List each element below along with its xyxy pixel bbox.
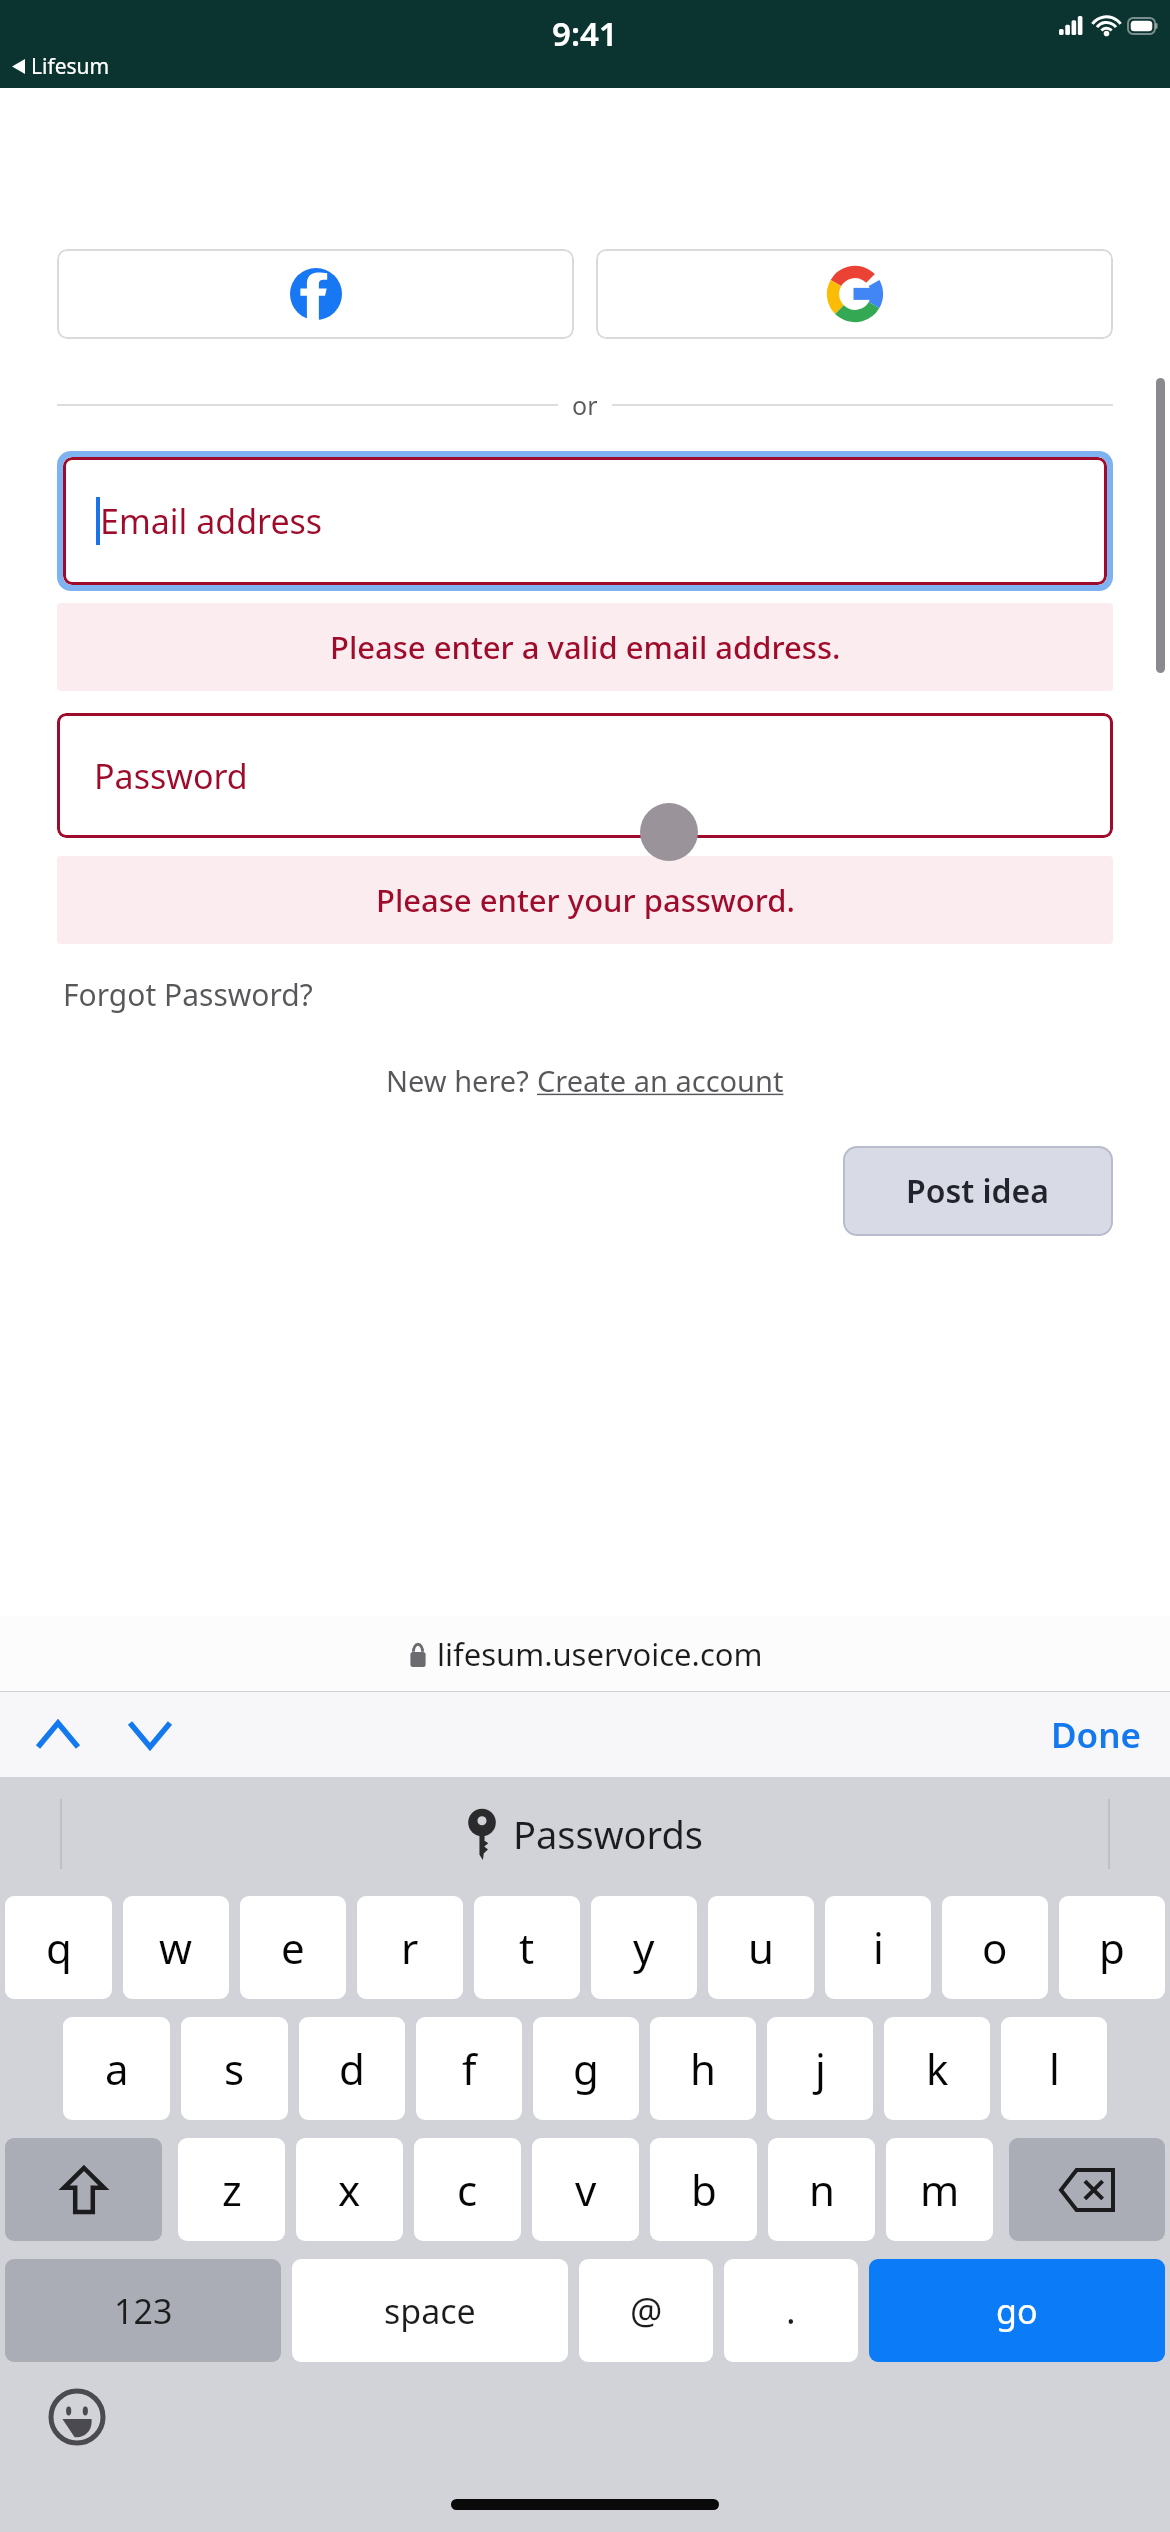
staticText: t — [519, 1919, 535, 1976]
staticText: Forgot Password? — [63, 974, 313, 1015]
button[interactable]: h — [650, 2017, 756, 2120]
staticText: p — [1099, 1919, 1125, 1976]
button[interactable]: go — [869, 2259, 1165, 2362]
button[interactable]: v — [532, 2138, 639, 2241]
button[interactable]: Sign in with Google — [596, 249, 1113, 339]
staticText: go — [996, 2288, 1038, 2334]
staticText: q — [46, 1919, 72, 1976]
staticText: or — [572, 388, 598, 422]
staticText: 9:41 — [552, 11, 618, 56]
staticText: f — [462, 2040, 477, 2097]
button[interactable]: . — [724, 2259, 858, 2362]
button[interactable]: New here? — [382, 1057, 788, 1104]
button[interactable]: i — [825, 1896, 931, 1999]
staticText: h — [690, 2040, 716, 2097]
button[interactable]: g — [533, 2017, 639, 2120]
button[interactable]: space — [292, 2259, 568, 2362]
staticText: space — [384, 2288, 476, 2334]
staticText: i — [873, 1919, 884, 1976]
staticText: w — [159, 1919, 193, 1976]
staticText: Create an account — [537, 1061, 784, 1100]
button[interactable]: a — [63, 2017, 170, 2120]
button[interactable]: Post idea — [843, 1146, 1113, 1236]
button[interactable]: f — [416, 2017, 522, 2120]
button[interactable]: c — [414, 2138, 521, 2241]
staticText: Email address — [100, 498, 323, 544]
button[interactable]: Previous field — [26, 1703, 90, 1767]
staticText: Lifesum — [31, 52, 110, 81]
staticText: s — [224, 2040, 245, 2097]
staticText: Please enter your password. — [376, 879, 795, 921]
staticText: lifesum.uservoice.com — [437, 1633, 763, 1675]
staticText: o — [982, 1919, 1008, 1976]
button[interactable]: z — [178, 2138, 285, 2241]
staticText: j — [815, 2040, 826, 2097]
button[interactable]: 123 — [5, 2259, 281, 2362]
button[interactable]: @ — [579, 2259, 713, 2362]
staticText: g — [573, 2040, 599, 2097]
staticText: Passwords — [513, 1808, 704, 1860]
button[interactable]: y — [591, 1896, 697, 1999]
button[interactable]: Backspace — [1009, 2138, 1165, 2241]
button[interactable]: x — [296, 2138, 403, 2241]
staticText: 123 — [114, 2288, 173, 2334]
button[interactable]: Emoji keyboard — [40, 2380, 114, 2454]
button[interactable]: Done — [1023, 1701, 1170, 1769]
button[interactable]: r — [357, 1896, 463, 1999]
button[interactable]: q — [5, 1896, 112, 1999]
button[interactable]: Passwords — [447, 1800, 724, 1868]
button[interactable]: s — [181, 2017, 288, 2120]
button[interactable]: p — [1059, 1896, 1165, 1999]
staticText: Done — [1051, 1711, 1142, 1759]
staticText: a — [105, 2040, 129, 2097]
button[interactable]: w — [123, 1896, 229, 1999]
button[interactable]: Lifesum — [8, 50, 114, 83]
staticText: d — [339, 2040, 365, 2097]
button[interactable]: j — [767, 2017, 873, 2120]
button[interactable]: Shift — [5, 2138, 162, 2241]
button[interactable]: Email address — [63, 457, 1107, 585]
button[interactable]: l — [1001, 2017, 1107, 2120]
button[interactable]: b — [650, 2138, 757, 2241]
staticText: . — [786, 2286, 796, 2335]
staticText: n — [809, 2161, 835, 2218]
button[interactable]: u — [708, 1896, 814, 1999]
staticText: l — [1049, 2040, 1060, 2097]
staticText: m — [920, 2161, 960, 2218]
button[interactable]: d — [299, 2017, 405, 2120]
button[interactable]: m — [886, 2138, 993, 2241]
button[interactable]: k — [884, 2017, 990, 2120]
staticText: New here? — [386, 1061, 537, 1100]
button[interactable]: lifesum.uservoice.com — [398, 1629, 773, 1679]
button[interactable]: n — [768, 2138, 875, 2241]
button[interactable]: Password — [57, 713, 1113, 838]
button[interactable]: Forgot Password? — [57, 970, 319, 1019]
button[interactable]: o — [942, 1896, 1048, 1999]
staticText: k — [926, 2040, 949, 2097]
staticText: e — [281, 1919, 305, 1976]
button[interactable]: Next field — [118, 1703, 182, 1767]
staticText: Password — [94, 753, 248, 799]
button[interactable]: t — [474, 1896, 580, 1999]
staticText: Please enter a valid email address. — [330, 626, 841, 668]
staticText: z — [222, 2161, 242, 2218]
staticText: Post idea — [906, 1169, 1050, 1213]
staticText: @ — [630, 2286, 663, 2335]
button[interactable]: Sign in with Facebook — [57, 249, 574, 339]
staticText: u — [748, 1919, 774, 1976]
staticText: c — [457, 2161, 478, 2218]
staticText: r — [401, 1919, 419, 1976]
staticText: b — [691, 2161, 717, 2218]
staticText: x — [338, 2161, 361, 2218]
staticText: v — [575, 2161, 597, 2218]
staticText: y — [633, 1919, 655, 1976]
button[interactable]: e — [240, 1896, 346, 1999]
